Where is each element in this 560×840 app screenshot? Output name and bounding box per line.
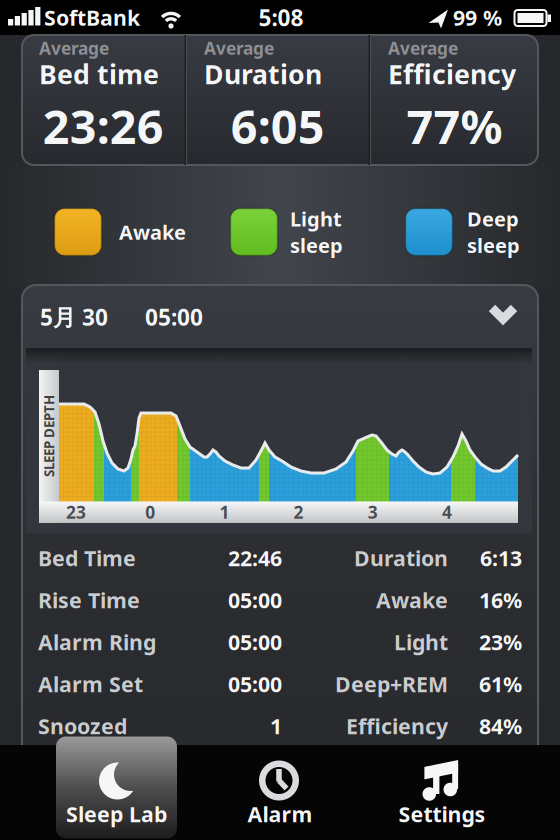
staticText: 23:26 xyxy=(43,95,164,157)
staticText: Average xyxy=(39,36,109,59)
staticText: 23 xyxy=(66,500,86,523)
staticText: 05:00 xyxy=(228,586,282,614)
staticText: 22:46 xyxy=(228,544,282,572)
staticText: 0 xyxy=(145,500,155,523)
staticText: Alarm xyxy=(247,800,312,828)
staticText: sleep xyxy=(467,232,520,259)
staticText: Snoozed xyxy=(38,712,127,740)
staticText: Duration xyxy=(354,544,448,572)
staticText: 16% xyxy=(479,586,522,614)
staticText: sleep xyxy=(290,232,343,259)
staticText: 99 % xyxy=(453,3,502,32)
staticText: 05:00 xyxy=(145,302,203,332)
button[interactable]: 5月 30 xyxy=(22,285,538,348)
staticText: 84% xyxy=(479,712,522,740)
staticText: 05:00 xyxy=(228,628,282,656)
staticText: 1 xyxy=(270,712,282,740)
staticText: Deep+REM xyxy=(335,670,448,698)
staticText: 77% xyxy=(406,95,502,157)
staticText: Alarm Set xyxy=(38,670,143,698)
staticText: 05:00 xyxy=(228,670,282,698)
staticText: Average xyxy=(204,36,274,59)
staticText: 4 xyxy=(442,500,452,523)
staticText: 6:05 xyxy=(231,95,325,157)
button[interactable]: Settings xyxy=(382,745,502,840)
button[interactable]: Alarm xyxy=(220,745,340,840)
staticText: Deep xyxy=(467,205,519,232)
staticText: 5:08 xyxy=(258,2,303,32)
staticText: Light xyxy=(394,628,448,656)
staticText: 23% xyxy=(479,628,522,656)
staticText: Awake xyxy=(376,586,448,614)
staticText: 6:13 xyxy=(480,544,522,572)
staticText: SLEEP DEPTH xyxy=(8,427,90,445)
staticText: Light xyxy=(290,205,342,232)
staticText: Efficiency xyxy=(388,56,516,92)
staticText: Alarm Ring xyxy=(38,628,156,656)
staticText: Bed time xyxy=(39,56,159,92)
staticText: Average xyxy=(388,36,458,59)
staticText: 2 xyxy=(294,500,304,523)
staticText: Duration xyxy=(204,56,322,92)
staticText: 3 xyxy=(368,500,378,523)
staticText: Rise Time xyxy=(38,586,140,614)
staticText: SoftBank xyxy=(44,3,140,32)
staticText: Settings xyxy=(398,800,485,828)
staticText: 1 xyxy=(219,500,229,523)
staticText: Efficiency xyxy=(346,712,448,740)
staticText: Awake xyxy=(119,219,186,245)
staticText: Sleep Lab xyxy=(66,800,167,828)
staticText: 5月 30 xyxy=(40,302,108,332)
button[interactable]: Sleep Lab xyxy=(56,736,177,838)
staticText: 61% xyxy=(479,670,522,698)
staticText: Bed Time xyxy=(38,544,136,572)
